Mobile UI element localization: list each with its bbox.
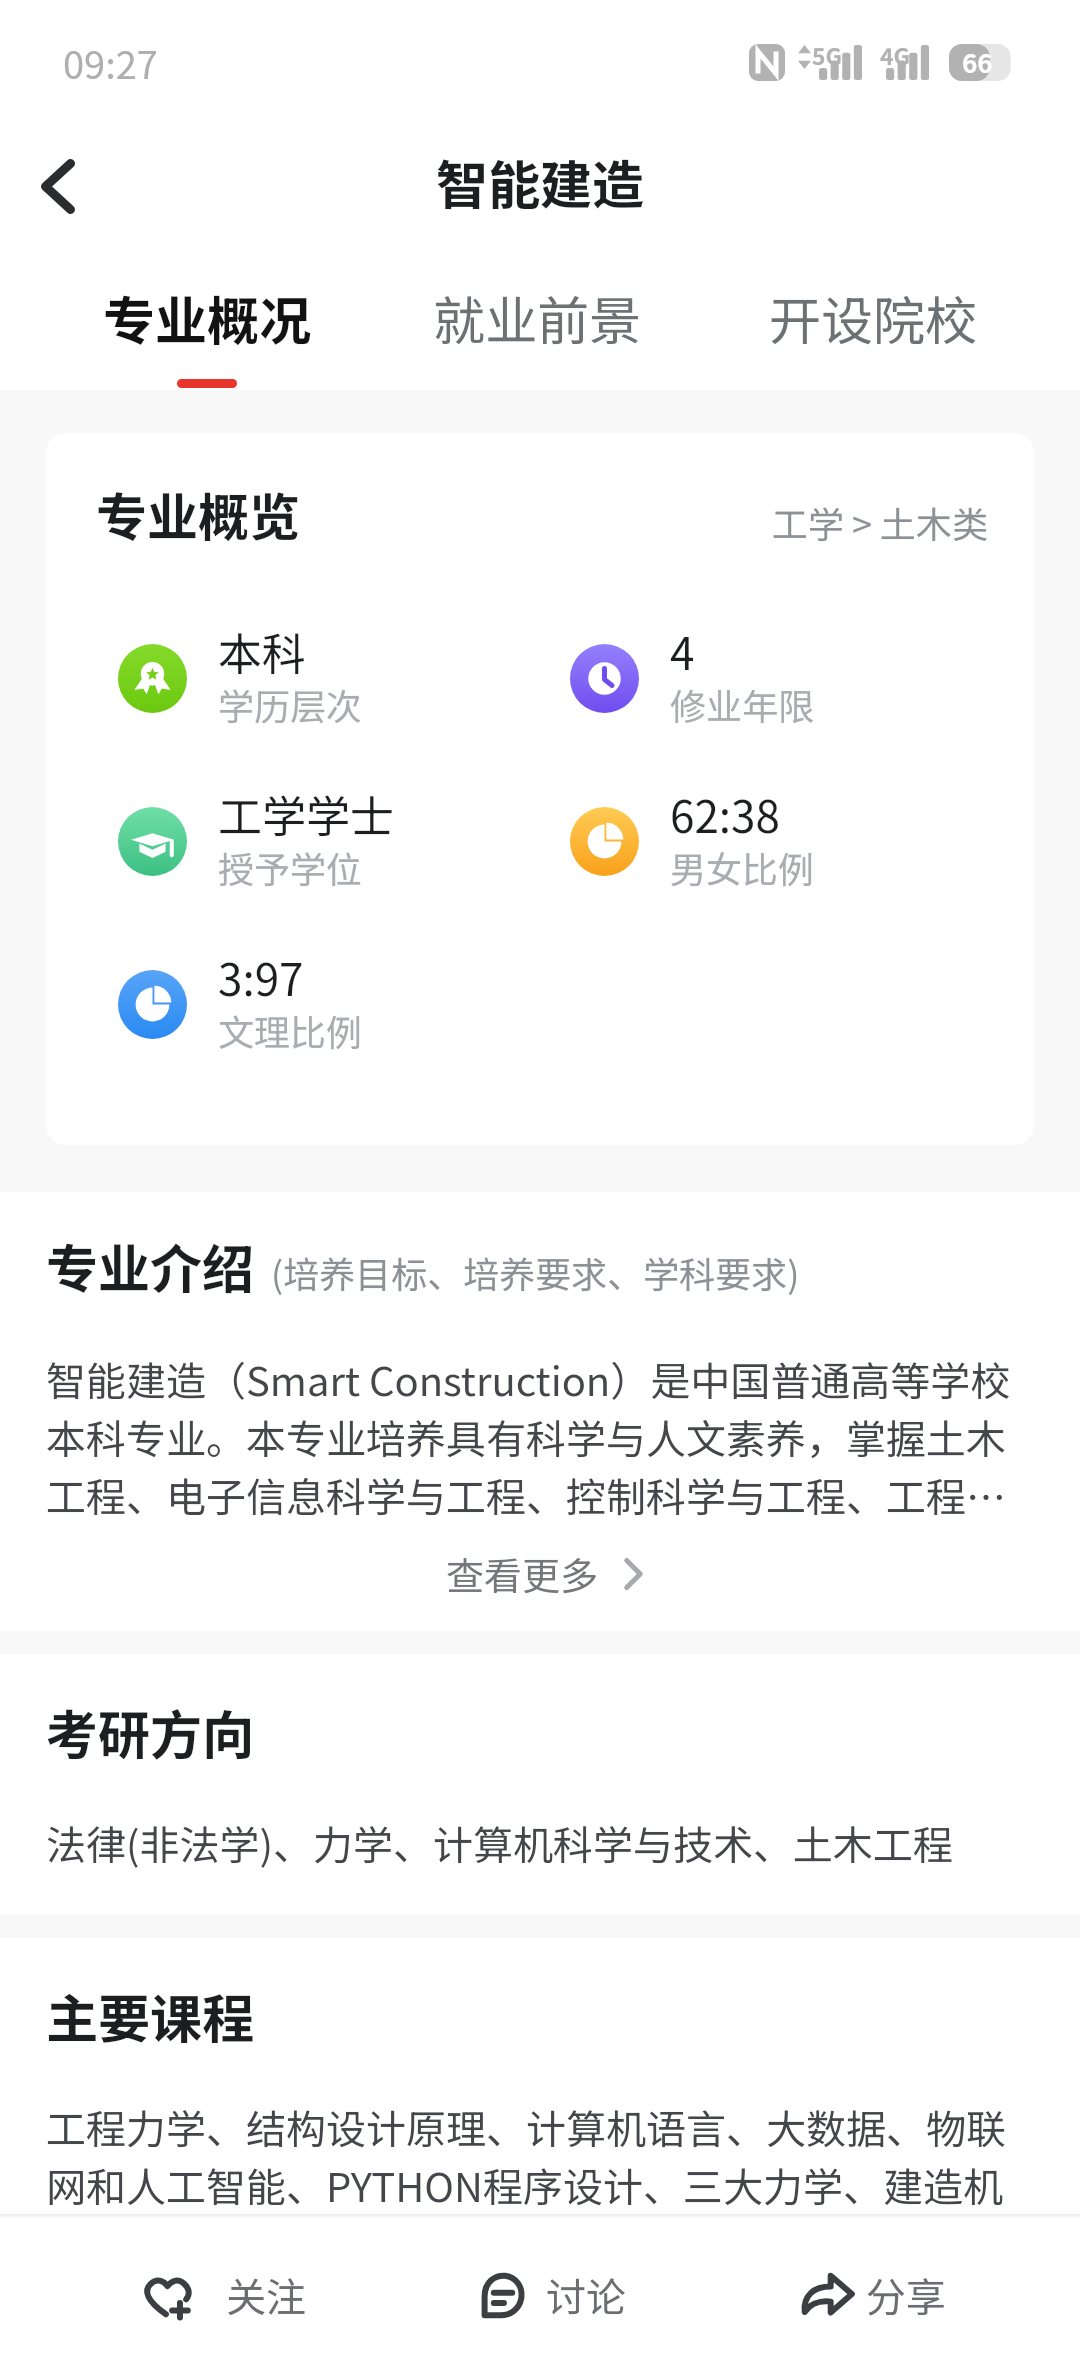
staticText: 专业介绍 (46, 1228, 255, 1303)
staticText: 专业概览 (96, 477, 301, 551)
button[interactable]: 查看更多 (432, 1538, 656, 1609)
button[interactable]: Back (8, 136, 108, 236)
button[interactable]: 专业概况 (72, 260, 342, 390)
staticText: 修业年限 (670, 678, 815, 730)
staticText: 讨论 (546, 2266, 626, 2324)
button[interactable]: 讨论 (456, 2240, 650, 2350)
staticText: 男女比例 (670, 841, 815, 893)
staticText: 就业前景 (433, 280, 642, 355)
button[interactable]: 开设院校 (738, 260, 1008, 390)
staticText: 文理比例 (218, 1004, 363, 1056)
button[interactable]: 分享 (777, 2240, 970, 2350)
staticText: 专业概况 (103, 280, 312, 355)
staticText: 主要课程 (46, 1978, 255, 2053)
staticText: 智能建造 (436, 144, 645, 219)
button[interactable]: 关注 (118, 2240, 330, 2350)
staticText: 工程力学、结构设计原理、计算机语言、大数据、物联网和人工智能、PYTHON程序设… (46, 2098, 1034, 2214)
staticText: (培养目标、培养要求、学科要求) (271, 1246, 800, 1298)
staticText: 09:27 (63, 35, 158, 90)
staticText: 分享 (866, 2266, 946, 2324)
staticText: 考研方向 (46, 1694, 255, 1769)
staticText: 工学 > 土木类 (772, 496, 989, 548)
staticText: 3:97 (218, 945, 304, 1009)
staticText: 本科 (218, 619, 306, 683)
staticText: 4 (670, 619, 695, 683)
staticText: 5G (812, 38, 843, 71)
staticText: 智能建造（Smart Construction）是中国普通高等学校本科专业。本专… (46, 1350, 1034, 1524)
staticText: 66 (962, 43, 993, 81)
staticText: 62:38 (670, 782, 780, 846)
staticText: 授予学位 (218, 841, 363, 893)
staticText: 查看更多 (446, 1546, 599, 1601)
staticText: 开设院校 (769, 280, 978, 355)
staticText: 关注 (226, 2266, 306, 2324)
staticText: 学历层次 (218, 678, 363, 730)
button[interactable]: 就业前景 (402, 260, 672, 390)
staticText: 工学学士 (218, 782, 394, 846)
staticText: 法律(非法学)、力学、计算机科学与技术、土木工程 (46, 1814, 954, 1872)
staticText: 4G (880, 38, 911, 71)
